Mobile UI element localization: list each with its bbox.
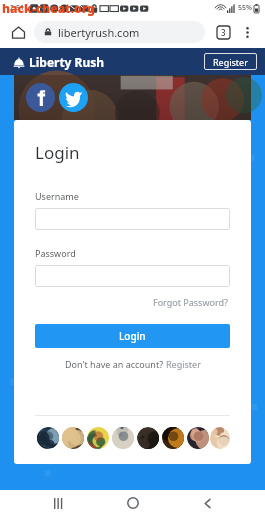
staticText: Register	[213, 56, 248, 68]
staticText: libertyrush.com	[58, 25, 140, 40]
staticText: Username	[35, 190, 79, 202]
button[interactable]: Member 5	[135, 425, 160, 450]
button[interactable]: Home	[8, 22, 28, 42]
button[interactable]: libertyrush.com	[34, 21, 205, 43]
button[interactable]: Member 3	[85, 425, 110, 450]
button[interactable]: Facebook	[26, 83, 55, 112]
button[interactable]: Recent apps	[41, 490, 75, 516]
button[interactable]: Member 2	[60, 425, 85, 450]
button[interactable]: More options	[237, 22, 257, 42]
staticText: 55%	[238, 3, 252, 13]
button[interactable]: Tabs	[213, 22, 233, 42]
button[interactable]: Forgot Password?	[151, 294, 230, 310]
staticText: Don't have an account?	[65, 358, 166, 370]
button[interactable]: Liberty Rush	[13, 54, 105, 70]
button[interactable]: Register	[166, 358, 201, 370]
staticText: Login	[119, 329, 146, 343]
button[interactable]: Twitter	[59, 83, 88, 112]
staticText: Liberty Rush	[29, 54, 105, 70]
button[interactable]	[35, 208, 230, 230]
staticText: hack-cheat.org	[2, 0, 95, 16]
button[interactable]: Member 4	[110, 425, 135, 450]
staticText: 3	[221, 27, 226, 38]
button[interactable]: Register	[204, 53, 257, 70]
button[interactable]: Login	[35, 324, 230, 348]
staticText: Login	[35, 141, 80, 164]
button[interactable]: Home	[116, 490, 150, 516]
button[interactable]: Member 7	[185, 425, 210, 450]
button[interactable]	[35, 265, 230, 287]
staticText: 2:51	[10, 3, 24, 13]
button[interactable]: Member 6	[160, 425, 185, 450]
staticText: Password	[35, 247, 76, 259]
button[interactable]: Back	[190, 490, 224, 516]
button[interactable]: Member 8	[210, 425, 230, 450]
button[interactable]: Member 1	[35, 425, 60, 450]
